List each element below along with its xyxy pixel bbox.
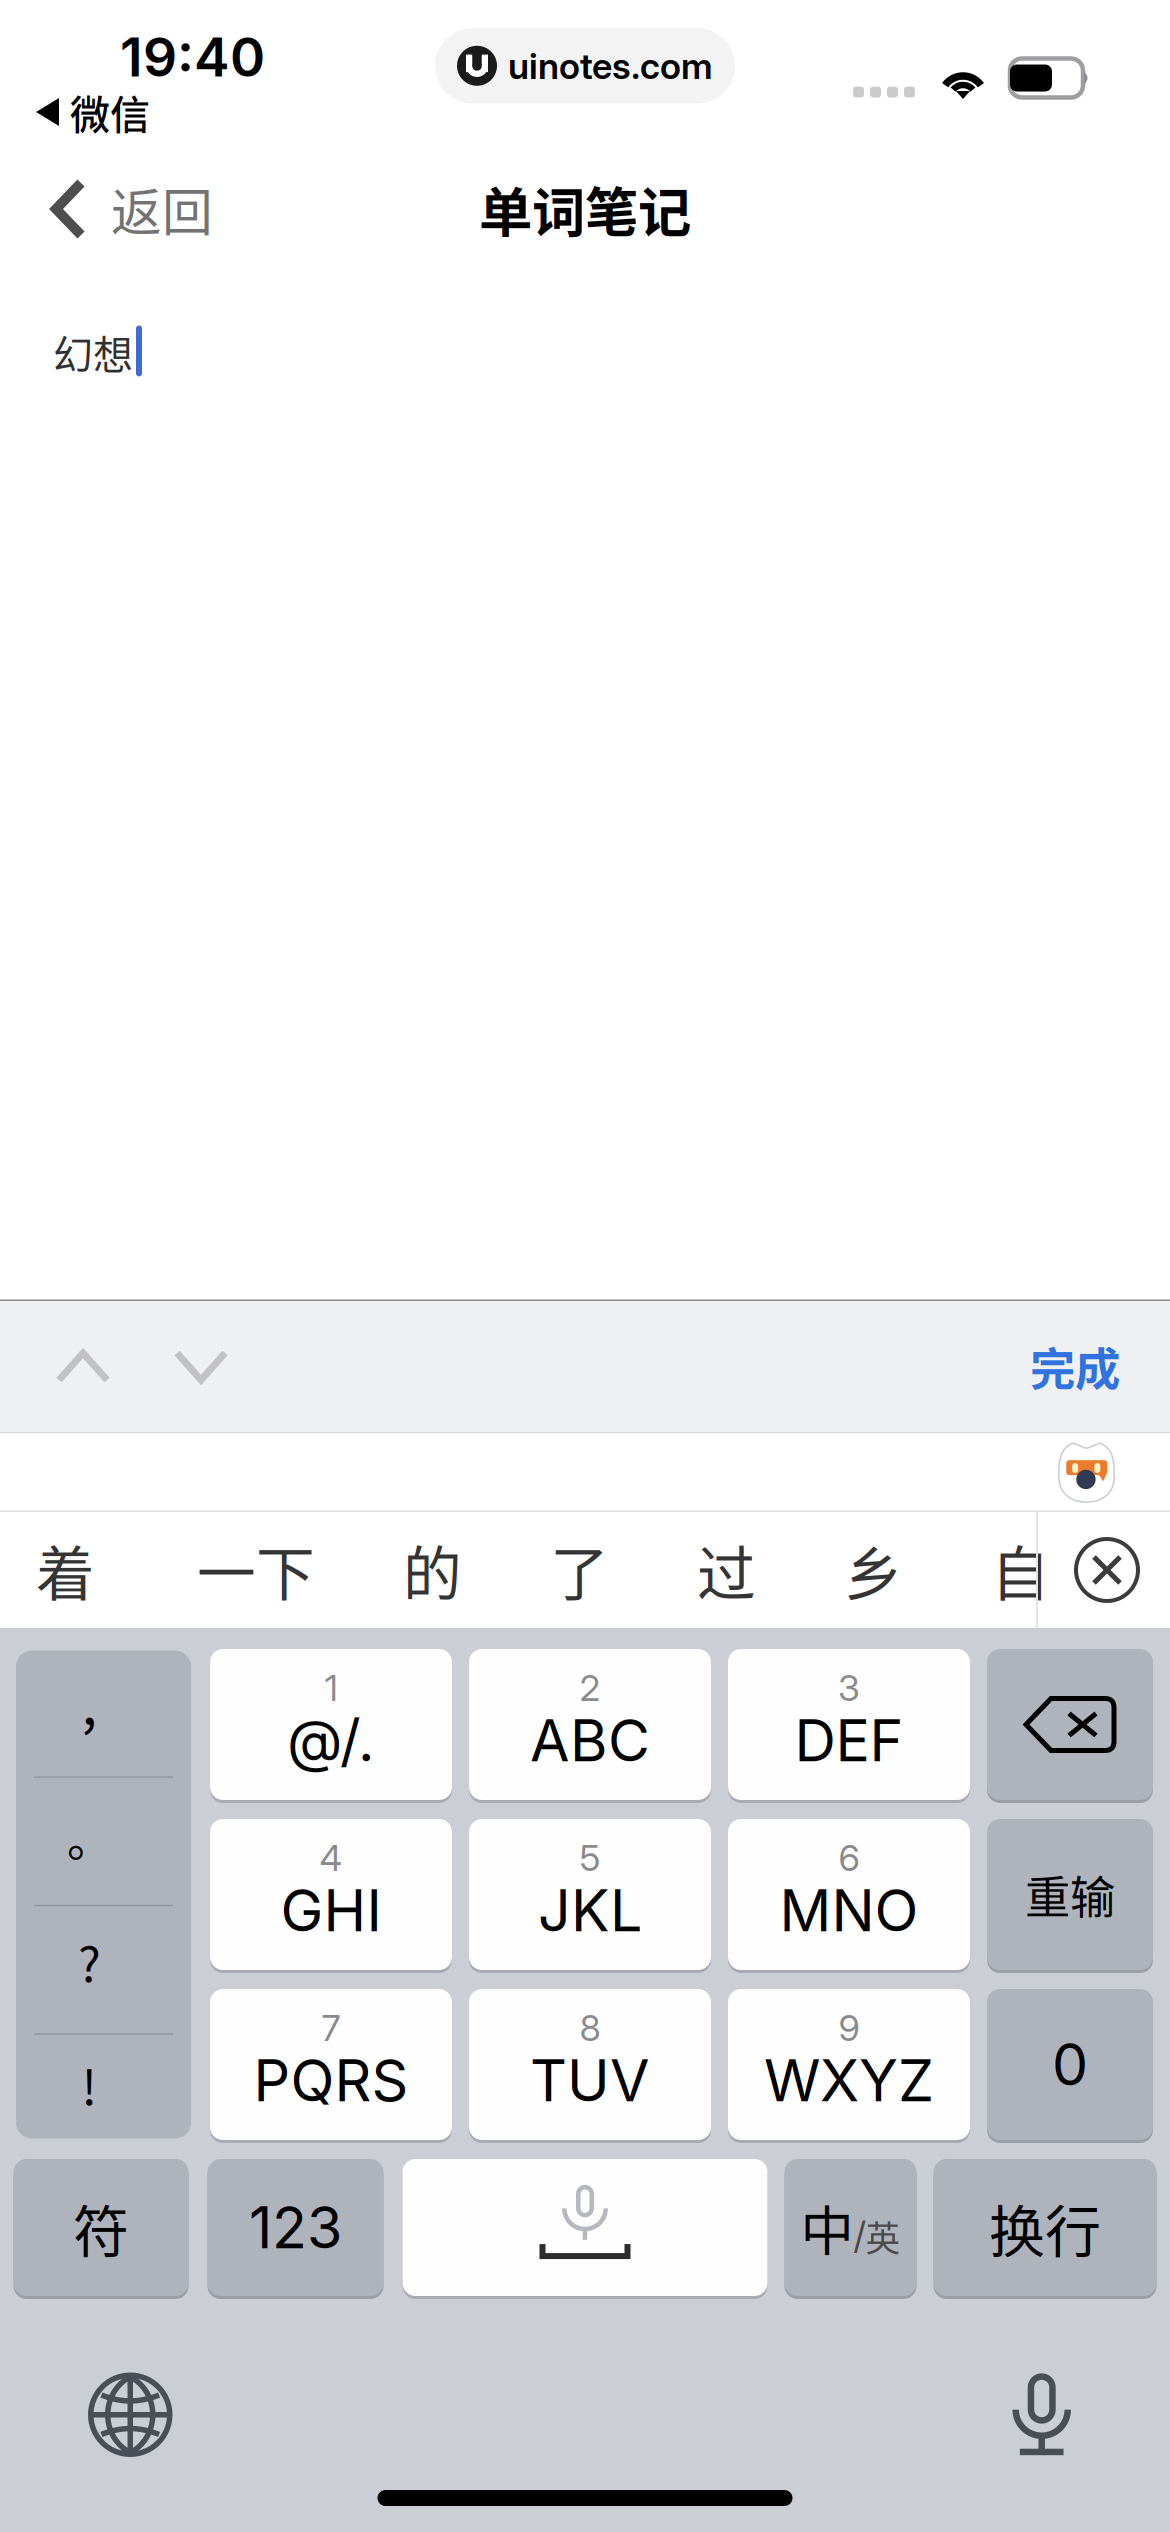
staticText: 着 bbox=[36, 1527, 95, 1612]
staticText: 9 bbox=[838, 2006, 859, 2050]
button[interactable]: 的 bbox=[359, 1509, 506, 1630]
button[interactable]: 重输 bbox=[987, 1816, 1153, 1973]
staticText: , bbox=[81, 1660, 97, 1741]
staticText: JKL bbox=[538, 1876, 642, 1945]
staticText: 中 bbox=[800, 2189, 853, 2266]
staticText: 换行 bbox=[989, 2187, 1101, 2268]
button[interactable]: Next field bbox=[142, 1324, 260, 1409]
button[interactable]: 123 bbox=[207, 2156, 383, 2299]
button[interactable]: 5 bbox=[469, 1816, 711, 1973]
button[interactable]: 9 bbox=[728, 1986, 970, 2143]
button[interactable]: 了 bbox=[506, 1509, 653, 1630]
staticText: 7 bbox=[321, 2006, 340, 2050]
staticText: 6 bbox=[838, 1836, 859, 1880]
button[interactable]: 一下 bbox=[153, 1509, 359, 1630]
staticText: 幻想 bbox=[53, 323, 133, 381]
button[interactable]: 1 bbox=[210, 1646, 452, 1803]
staticText: 过 bbox=[697, 1527, 756, 1612]
button[interactable]: Dictation bbox=[992, 2353, 1091, 2476]
button[interactable]: 着 bbox=[0, 1509, 153, 1630]
staticText: 英 bbox=[865, 2211, 900, 2262]
staticText: 自 bbox=[991, 1527, 1050, 1612]
button[interactable]: 完成 bbox=[995, 1306, 1170, 1427]
staticText: ? bbox=[78, 1926, 101, 1995]
staticText: GHI bbox=[280, 1876, 381, 1945]
staticText: WXYZ bbox=[764, 2046, 934, 2115]
button[interactable]: Space bbox=[402, 2156, 767, 2299]
staticText: DEF bbox=[794, 1706, 903, 1775]
staticText: 0 bbox=[1052, 2030, 1088, 2099]
staticText: ABC bbox=[530, 1706, 650, 1775]
button[interactable]: Input method bbox=[1058, 1441, 1115, 1503]
button[interactable]: 自 bbox=[947, 1509, 1094, 1630]
staticText: PQRS bbox=[253, 2046, 408, 2115]
staticText: / bbox=[853, 2213, 865, 2258]
button[interactable]: 2 bbox=[469, 1646, 711, 1803]
staticText: 1 bbox=[324, 1666, 337, 1710]
button[interactable]: 0 bbox=[987, 1986, 1153, 2143]
staticText: 19:40 bbox=[120, 25, 265, 89]
staticText: 。 bbox=[67, 1804, 112, 1870]
staticText: 乡 bbox=[844, 1527, 903, 1612]
staticText: 微信 bbox=[70, 83, 150, 141]
staticText: 单词笔记 bbox=[479, 170, 691, 248]
button[interactable]: Punctuation bbox=[16, 1650, 191, 2138]
button[interactable]: 7 bbox=[210, 1986, 452, 2143]
staticText: 完成 bbox=[1030, 1334, 1120, 1399]
button[interactable]: Delete bbox=[1075, 1538, 1139, 1602]
staticText: 返回 bbox=[111, 172, 213, 246]
button[interactable]: 换行 bbox=[933, 2156, 1156, 2299]
staticText: 3 bbox=[838, 1666, 860, 1710]
staticText: 一下 bbox=[197, 1527, 315, 1612]
button[interactable]: 3 bbox=[728, 1646, 970, 1803]
staticText: ! bbox=[81, 2049, 97, 2118]
staticText: TUV bbox=[530, 2046, 650, 2115]
staticText: 了 bbox=[550, 1527, 609, 1612]
staticText: 2 bbox=[579, 1666, 600, 1710]
staticText: 的 bbox=[403, 1527, 462, 1612]
button[interactable]: 返回 bbox=[0, 148, 239, 270]
button[interactable]: 符 bbox=[13, 2156, 188, 2299]
staticText: 5 bbox=[579, 1836, 600, 1880]
button[interactable]: 6 bbox=[728, 1816, 970, 1973]
staticText: 8 bbox=[579, 2006, 600, 2050]
staticText: MNO bbox=[779, 1876, 918, 1945]
button[interactable]: Switch keyboard bbox=[68, 2352, 192, 2477]
button[interactable] bbox=[987, 1646, 1153, 1803]
button[interactable]: 8 bbox=[469, 1986, 711, 2143]
button[interactable]: Previous field bbox=[24, 1324, 142, 1409]
staticText: 重输 bbox=[1025, 1862, 1115, 1927]
staticText: uinotes.com bbox=[508, 44, 713, 88]
staticText: 符 bbox=[73, 2187, 129, 2268]
button[interactable]: 中 bbox=[784, 2156, 916, 2299]
button[interactable]: 过 bbox=[653, 1509, 800, 1630]
staticText: @/. bbox=[287, 1706, 375, 1775]
button[interactable]: 乡 bbox=[800, 1509, 947, 1630]
button[interactable]: 4 bbox=[210, 1816, 452, 1973]
staticText: 123 bbox=[249, 2193, 342, 2262]
staticText: 4 bbox=[319, 1836, 342, 1880]
